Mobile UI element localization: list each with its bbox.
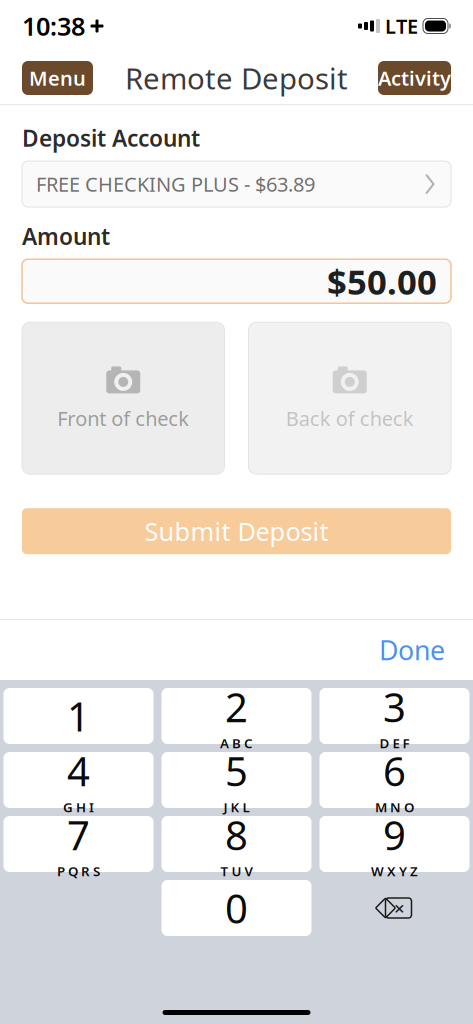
staticText: Menu bbox=[29, 65, 86, 91]
staticText: × bbox=[394, 896, 405, 920]
button[interactable]: $50.00 bbox=[22, 259, 451, 303]
button[interactable]: 4 bbox=[3, 752, 153, 808]
staticText: 6 bbox=[383, 744, 406, 797]
staticText: Amount bbox=[22, 221, 110, 251]
button[interactable]: Done bbox=[365, 624, 459, 676]
staticText: A B C bbox=[220, 734, 253, 752]
staticText: $50.00 bbox=[327, 258, 437, 304]
staticText: Back of check bbox=[286, 405, 414, 431]
staticText: Submit Deposit bbox=[144, 514, 328, 548]
staticText: 10:38 bbox=[22, 9, 85, 43]
staticText: G H I bbox=[63, 798, 94, 816]
button[interactable]: Activity bbox=[378, 61, 451, 95]
staticText: 4 bbox=[67, 744, 90, 797]
staticText: J K L bbox=[223, 798, 249, 816]
staticText: Activity bbox=[378, 65, 451, 91]
button[interactable]: 7 bbox=[3, 816, 153, 872]
staticText: FREE CHECKING PLUS - $63.89 bbox=[36, 171, 315, 197]
button[interactable]: 5 bbox=[161, 752, 311, 808]
staticText: D E F bbox=[379, 734, 409, 752]
button[interactable]: FREE CHECKING PLUS - $63.89 bbox=[22, 161, 451, 207]
staticText: LTE bbox=[385, 13, 418, 39]
staticText: 3 bbox=[383, 680, 406, 733]
button[interactable]: 0 bbox=[161, 880, 311, 936]
button[interactable]: Delete bbox=[319, 880, 469, 936]
staticText: 1 bbox=[67, 689, 90, 742]
button[interactable]: 8 bbox=[161, 816, 311, 872]
staticText: 7 bbox=[67, 808, 90, 861]
button[interactable]: 1 bbox=[3, 688, 153, 744]
staticText: Done bbox=[379, 632, 445, 668]
button[interactable]: 6 bbox=[319, 752, 469, 808]
button[interactable]: 9 bbox=[319, 816, 469, 872]
button[interactable]: Menu bbox=[22, 61, 93, 95]
staticText: 9 bbox=[383, 808, 406, 861]
staticText: 0 bbox=[225, 881, 248, 934]
staticText: T U V bbox=[220, 862, 252, 880]
staticText: 8 bbox=[225, 808, 248, 861]
staticText: M N O bbox=[375, 798, 414, 816]
staticText: 5 bbox=[225, 744, 248, 797]
staticText: 2 bbox=[225, 680, 248, 733]
staticText: W X Y Z bbox=[371, 862, 418, 880]
button[interactable]: Back of check bbox=[248, 322, 451, 474]
button[interactable]: Front of check bbox=[22, 322, 224, 474]
button[interactable]: Submit Deposit bbox=[22, 508, 451, 554]
staticText: Front of check bbox=[57, 405, 189, 431]
staticText: Deposit Account bbox=[22, 123, 200, 153]
button[interactable]: 3 bbox=[319, 688, 469, 744]
staticText: Remote Deposit bbox=[125, 58, 348, 97]
button[interactable]: 2 bbox=[161, 688, 311, 744]
staticText: P Q R S bbox=[57, 862, 100, 880]
